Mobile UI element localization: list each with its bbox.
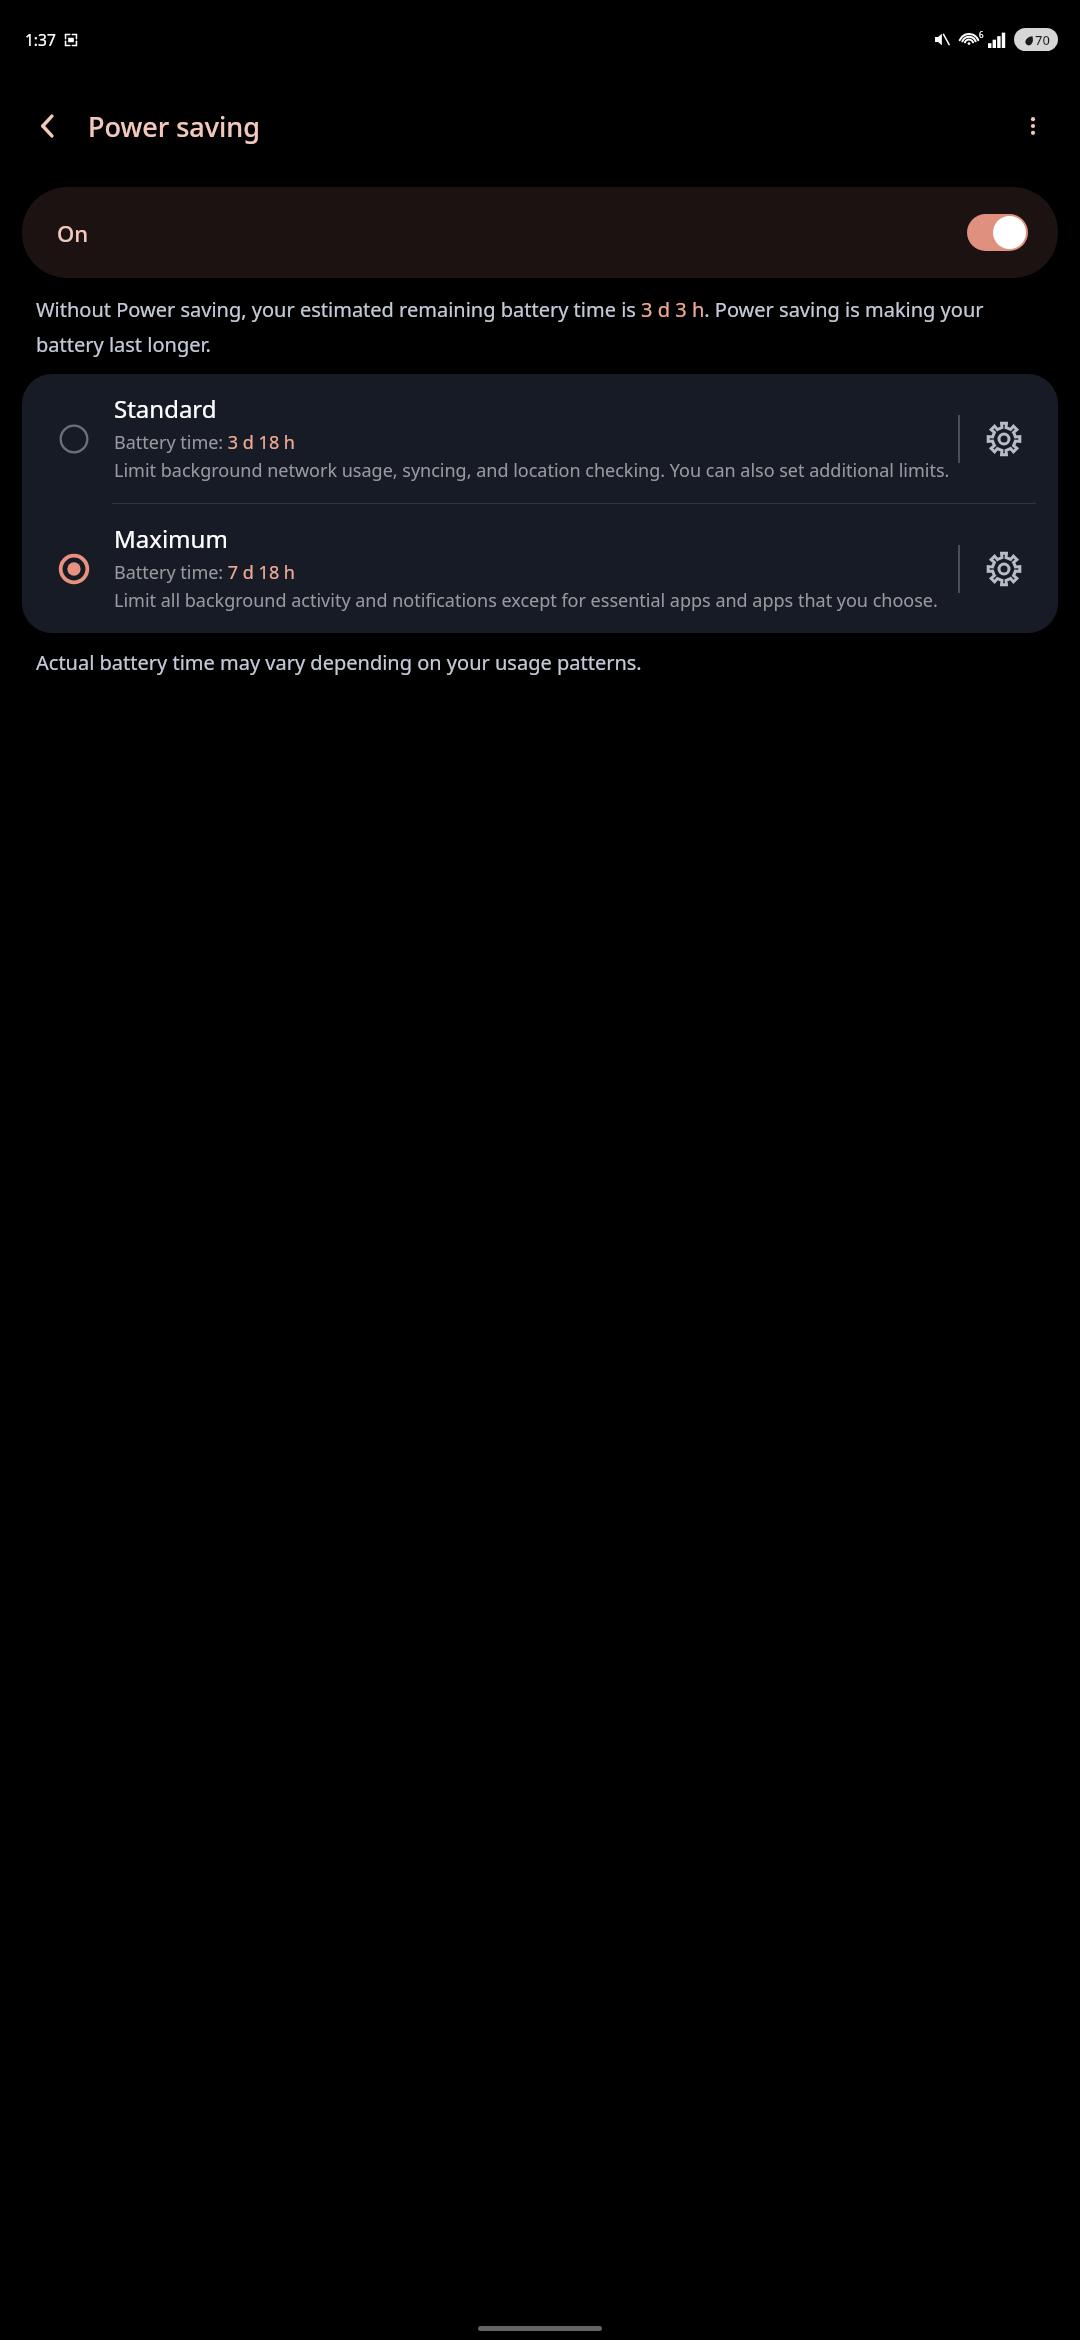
staticText: 70 — [1035, 31, 1050, 49]
button[interactable]: Back — [22, 100, 74, 152]
staticText: Limit background network usage, syncing,… — [114, 458, 950, 483]
staticText: Battery time: 3 d 18 h — [114, 430, 295, 455]
button[interactable]: Maximum — [22, 504, 1058, 633]
staticText: Maximum — [114, 522, 228, 555]
button[interactable]: Standard — [22, 374, 1058, 503]
button[interactable]: More options — [1008, 101, 1058, 151]
staticText: Standard — [114, 392, 217, 425]
button[interactable]: Standard settings — [976, 411, 1032, 467]
staticText: Power saving — [88, 108, 260, 145]
staticText: On — [57, 218, 89, 248]
other: Maximum — [48, 543, 100, 595]
staticText: Limit all background activity and notifi… — [114, 588, 938, 613]
button[interactable]: Maximum settings — [976, 541, 1032, 597]
staticText: 1:37 — [25, 29, 56, 50]
button[interactable]: On — [22, 187, 1058, 278]
staticText: Without Power saving, your estimated rem… — [36, 296, 1044, 358]
staticText: Actual battery time may vary depending o… — [36, 649, 642, 676]
staticText: 6 — [979, 29, 984, 40]
staticText: Battery time: 7 d 18 h — [114, 560, 295, 585]
other: Standard — [48, 413, 100, 465]
